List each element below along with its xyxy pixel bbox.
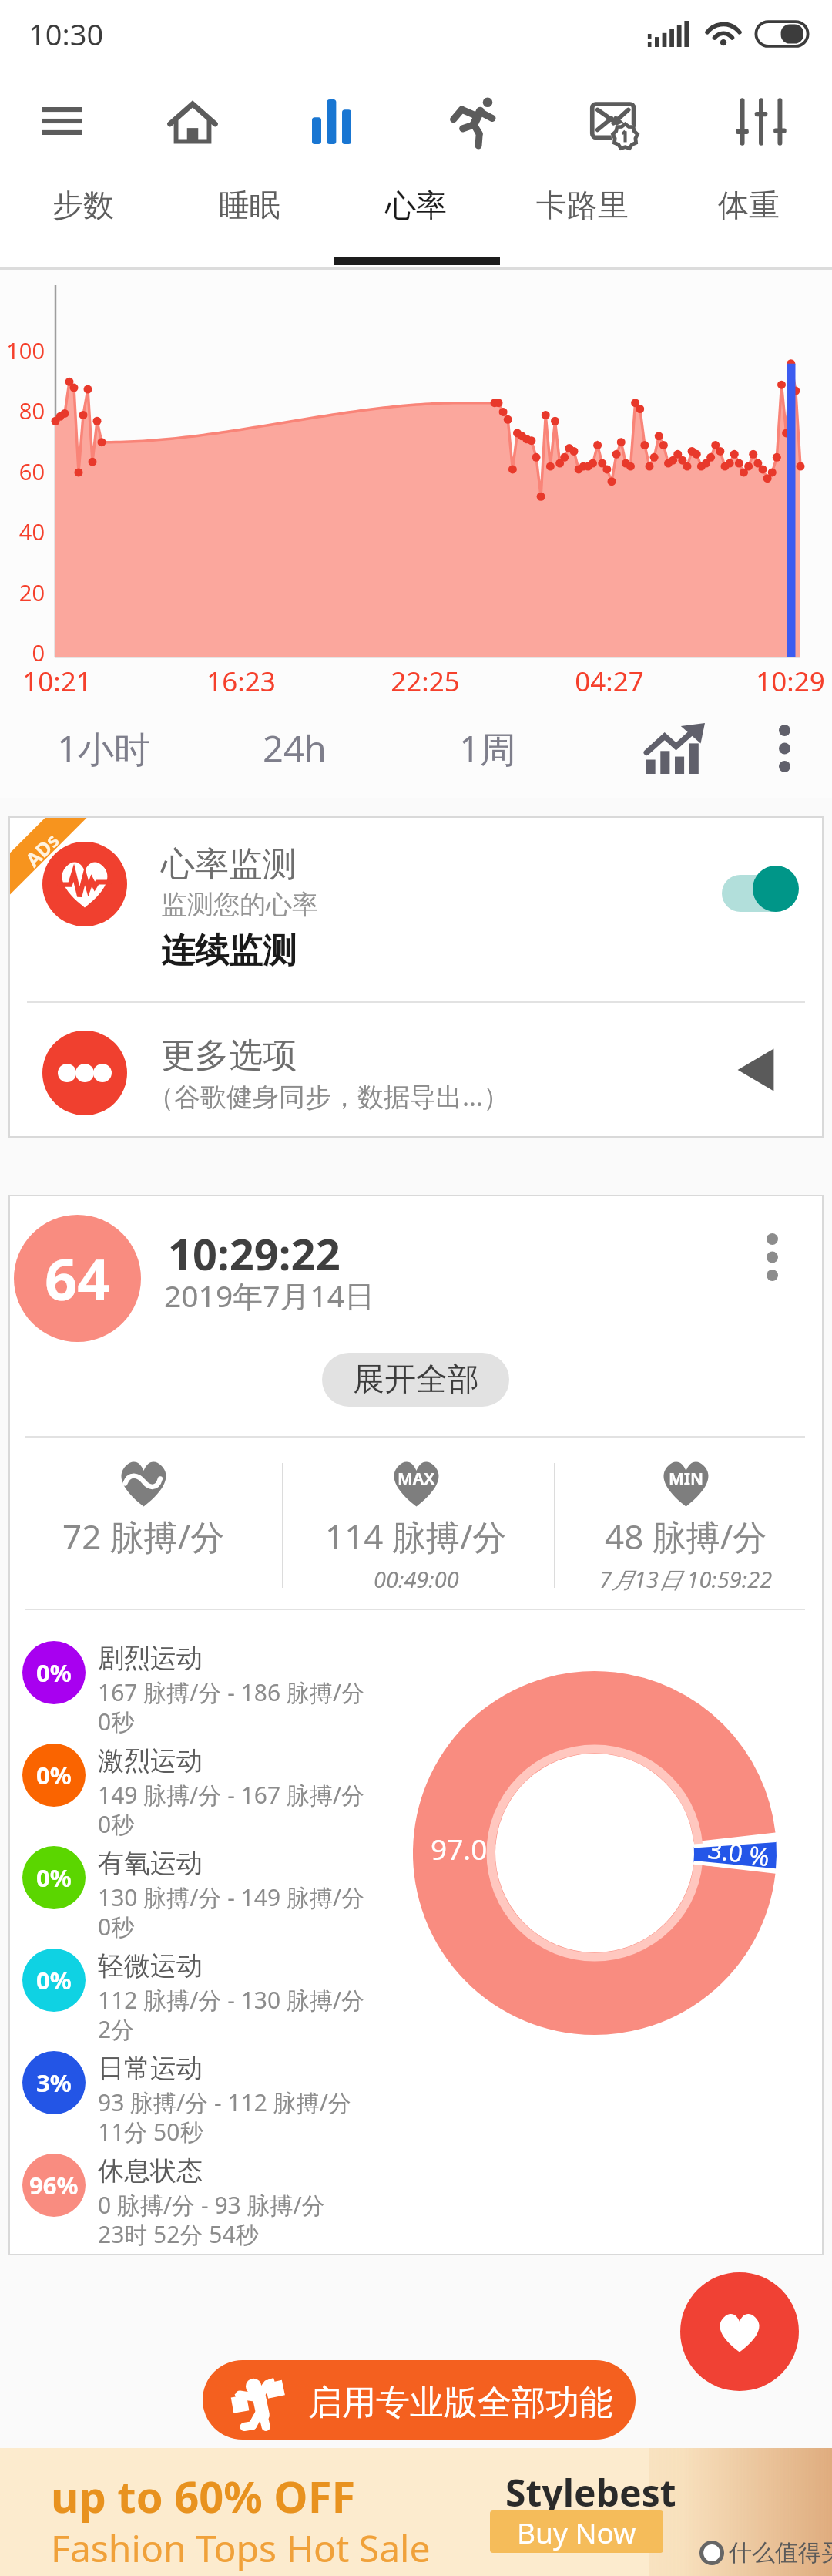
staticText: 10:21 bbox=[0, 663, 119, 700]
staticText: 00:49:00 bbox=[374, 1564, 459, 1594]
staticText: 0秒 bbox=[98, 1911, 135, 1942]
staticText: 日常运动 bbox=[98, 2052, 203, 2085]
button[interactable]: 更多选项 bbox=[8, 1003, 824, 1136]
staticText: 149 脉搏/分 - 167 脉搏/分 bbox=[98, 1779, 365, 1811]
staticText: 97.0 % bbox=[431, 1829, 518, 1868]
button[interactable]: 卡路里 bbox=[499, 163, 666, 267]
button[interactable]: More bbox=[767, 1233, 778, 1281]
staticText: 轻微运动 bbox=[98, 1949, 203, 1982]
staticText: 96% bbox=[29, 2169, 79, 2201]
staticText: 1小时 bbox=[57, 724, 150, 773]
button[interactable]: Activity bbox=[403, 68, 545, 163]
staticText: 48 脉搏/分 bbox=[605, 1513, 767, 1559]
staticText: 休息状态 bbox=[98, 2154, 203, 2188]
button[interactable]: Messages bbox=[545, 68, 687, 163]
staticText: 心率监测 bbox=[161, 843, 297, 886]
staticText: 20 bbox=[0, 577, 45, 607]
staticText: 100 bbox=[0, 335, 45, 365]
staticText: 0% bbox=[36, 1861, 72, 1894]
staticText: Fashion Tops Hot Sale bbox=[51, 2523, 431, 2573]
button[interactable]: 1小时 bbox=[8, 699, 199, 798]
staticText: 10:29:22 bbox=[168, 1224, 341, 1283]
button[interactable]: Settings bbox=[690, 68, 832, 163]
staticText: 2分 bbox=[98, 2013, 135, 2045]
staticText: 72 脉搏/分 bbox=[62, 1513, 225, 1559]
button[interactable]: More options bbox=[744, 699, 824, 798]
staticText: 有氧运动 bbox=[98, 1847, 203, 1880]
button[interactable]: 心率监测 bbox=[8, 816, 824, 1001]
staticText: 16:23 bbox=[179, 663, 303, 700]
staticText: 什么值得买 bbox=[729, 2538, 832, 2568]
button[interactable]: 步数 bbox=[0, 163, 166, 267]
staticText: 7月13日 10:59:22 bbox=[599, 1564, 773, 1595]
staticText: 24h bbox=[263, 724, 327, 773]
staticText: 0秒 bbox=[98, 1706, 135, 1737]
staticText: 激烈运动 bbox=[98, 1744, 203, 1777]
button[interactable]: Statistics bbox=[262, 68, 401, 163]
button[interactable]: 1周 bbox=[392, 699, 583, 798]
staticText: 112 脉搏/分 - 130 脉搏/分 bbox=[98, 1984, 365, 2016]
staticText: 40 bbox=[0, 516, 45, 546]
button[interactable]: Continuous monitoring toggle bbox=[708, 858, 808, 912]
staticText: 3.0 % bbox=[706, 1832, 772, 1874]
staticText: 11分 50秒 bbox=[98, 2116, 203, 2147]
staticText: up to 60% OFF bbox=[51, 2467, 356, 2525]
button[interactable]: 展开全部 bbox=[322, 1353, 509, 1407]
staticText: 0 bbox=[0, 637, 45, 668]
staticText: 64 bbox=[45, 1239, 110, 1317]
button[interactable]: 启用专业版全部功能 bbox=[203, 2360, 636, 2440]
staticText: 更多选项 bbox=[161, 1034, 297, 1077]
button[interactable]: up to 60% OFF bbox=[0, 2448, 832, 2576]
button[interactable]: Home bbox=[123, 68, 262, 163]
button[interactable]: Trends bbox=[609, 699, 741, 798]
staticText: 60 bbox=[0, 456, 45, 486]
staticText: 0秒 bbox=[98, 1808, 135, 1840]
staticText: 睡眠 bbox=[219, 186, 280, 224]
staticText: 0% bbox=[36, 1964, 72, 1996]
staticText: 22:25 bbox=[364, 663, 487, 700]
staticText: ADs bbox=[19, 827, 65, 872]
staticText: 2019年7月14日 bbox=[164, 1275, 375, 1316]
staticText: 0 脉搏/分 - 93 脉搏/分 bbox=[98, 2189, 325, 2221]
staticText: 监测您的心率 bbox=[161, 888, 318, 921]
button[interactable]: Measure heart rate bbox=[680, 2272, 799, 2356]
staticText: 步数 bbox=[52, 186, 114, 224]
staticText: 0% bbox=[36, 1656, 72, 1689]
staticText: 04:27 bbox=[548, 663, 671, 700]
staticText: 0% bbox=[36, 1759, 72, 1791]
button[interactable]: 体重 bbox=[666, 163, 832, 267]
staticText: Stylebest bbox=[505, 2467, 676, 2517]
staticText: 心率 bbox=[385, 186, 447, 224]
staticText: MIN bbox=[669, 1468, 704, 1490]
button[interactable]: 24h bbox=[199, 699, 390, 798]
staticText: 130 脉搏/分 - 149 脉搏/分 bbox=[98, 1882, 365, 1913]
staticText: 展开全部 bbox=[353, 1360, 479, 1400]
button[interactable]: Buy Now bbox=[490, 2510, 663, 2553]
staticText: 连续监测 bbox=[161, 930, 297, 972]
staticText: 93 脉搏/分 - 112 脉搏/分 bbox=[98, 2087, 351, 2118]
staticText: 167 脉搏/分 - 186 脉搏/分 bbox=[98, 1676, 365, 1708]
staticText: 卡路里 bbox=[536, 186, 629, 224]
staticText: 10:30 bbox=[29, 14, 104, 54]
staticText: 启用专业版全部功能 bbox=[308, 2382, 613, 2424]
staticText: 1周 bbox=[459, 724, 516, 773]
staticText: Buy Now bbox=[517, 2513, 636, 2551]
button[interactable]: 睡眠 bbox=[166, 163, 333, 267]
staticText: MAX bbox=[398, 1468, 435, 1490]
button[interactable]: Menu bbox=[0, 68, 123, 163]
staticText: 23时 52分 54秒 bbox=[98, 2218, 259, 2250]
button[interactable]: 心率 bbox=[333, 163, 499, 267]
staticText: 80 bbox=[0, 395, 45, 425]
staticText: 10:29 bbox=[729, 663, 832, 700]
staticText: 剧烈运动 bbox=[98, 1642, 203, 1675]
staticText: （谷歌健身同步，数据导出…） bbox=[148, 1078, 509, 1114]
staticText: 3% bbox=[36, 2067, 72, 2099]
staticText: 114 脉搏/分 bbox=[325, 1513, 507, 1559]
staticText: 体重 bbox=[718, 186, 780, 224]
